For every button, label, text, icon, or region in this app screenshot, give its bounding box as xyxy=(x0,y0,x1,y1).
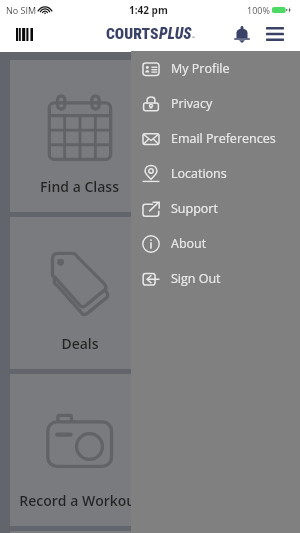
staticText: 1:42 pm xyxy=(129,3,168,17)
staticText: Find a Class xyxy=(40,177,119,196)
staticText: COURTS xyxy=(106,25,159,43)
button[interactable]: My Profile xyxy=(131,51,300,86)
staticText: Book a Court xyxy=(181,177,269,196)
staticText: Support xyxy=(171,200,218,217)
button[interactable]: Record a Workout xyxy=(10,374,149,526)
staticText: ™ xyxy=(192,35,195,41)
staticText: Record a Workout xyxy=(19,491,141,510)
staticText: Sign Out xyxy=(171,270,221,287)
button[interactable]: Support xyxy=(131,191,300,226)
staticText: No SIM xyxy=(6,4,37,16)
button[interactable]: Email Preferences xyxy=(131,121,300,156)
button[interactable]: Deals xyxy=(10,217,149,369)
button[interactable]: Menu xyxy=(258,20,292,47)
staticText: Locations xyxy=(171,165,227,182)
staticText: Email Preferences xyxy=(171,130,276,147)
button[interactable]: Find a Class xyxy=(10,60,149,212)
button[interactable]: Events xyxy=(155,217,294,369)
button[interactable]: Locations xyxy=(131,156,300,191)
staticText: 100% xyxy=(247,4,270,16)
button[interactable]: Barcode xyxy=(0,20,48,47)
button[interactable]: Sign Out xyxy=(131,261,300,296)
staticText: Deals xyxy=(61,334,99,353)
staticText: Privacy xyxy=(171,95,213,112)
button[interactable]: Book a Court xyxy=(155,60,294,212)
button[interactable]: Notifications xyxy=(226,20,258,47)
button[interactable]: Privacy xyxy=(131,86,300,121)
button[interactable]: About xyxy=(131,226,300,261)
staticText: My Profile xyxy=(171,60,230,77)
staticText: PLUS xyxy=(159,25,192,43)
staticText: About xyxy=(171,235,207,252)
